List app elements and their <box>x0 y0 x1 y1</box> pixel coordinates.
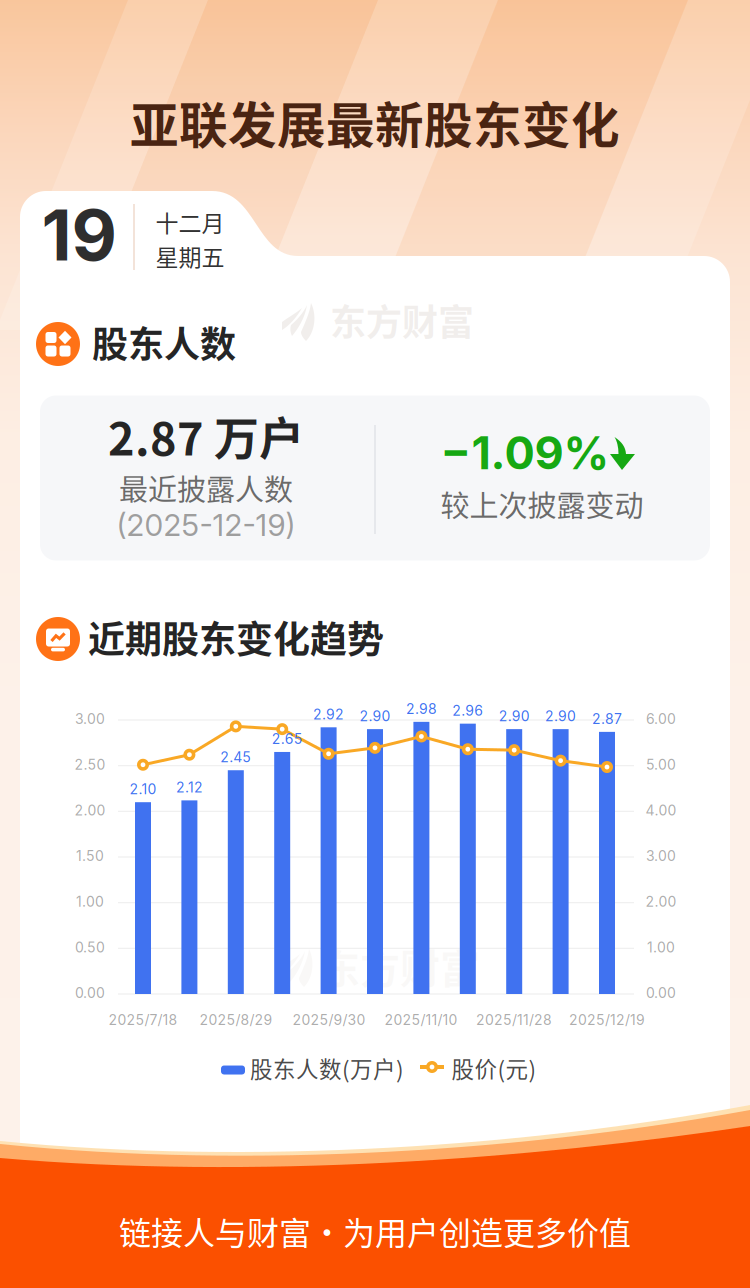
staticText: 亚联发展最新股东变化 <box>130 87 620 157</box>
staticText: 5.00 <box>646 756 676 773</box>
staticText: 近期股东变化趋势 <box>88 610 384 664</box>
staticText: 2.45 <box>220 749 251 766</box>
staticText: 2.12 <box>176 779 203 796</box>
staticText: −1.09% <box>440 426 609 480</box>
staticText: 2.10 <box>129 781 156 798</box>
staticText: 2025/8/29 <box>199 1011 272 1028</box>
staticText: 最近披露人数 <box>119 467 293 509</box>
staticText: 2025/11/28 <box>476 1011 552 1028</box>
staticText: 2.90 <box>499 708 530 725</box>
staticText: 十二月 <box>155 205 224 239</box>
staticText: 1.00 <box>647 939 675 956</box>
staticText: 2.87 万户 <box>108 403 304 469</box>
staticText: 2.00 <box>645 893 676 910</box>
staticText: 星期五 <box>155 239 224 273</box>
staticText: 较上次披露变动 <box>440 483 643 525</box>
staticText: 0.00 <box>646 984 676 1001</box>
staticText: 2025/11/10 <box>384 1011 457 1028</box>
staticText: 2.00 <box>74 802 105 819</box>
staticText: 2.96 <box>452 702 483 719</box>
staticText: 2.90 <box>359 708 390 725</box>
staticText: 链接人与财富·为用户创造更多价值 <box>119 1208 631 1254</box>
staticText: 19 <box>41 193 116 277</box>
staticText: 3.00 <box>646 847 676 864</box>
staticText: 1.50 <box>76 847 104 864</box>
staticText: 6.00 <box>646 710 676 727</box>
staticText: 2.90 <box>545 708 576 725</box>
staticText: 4.00 <box>645 802 676 819</box>
staticText: 东方财富 <box>320 937 480 995</box>
staticText: 2.50 <box>74 756 105 773</box>
staticText: 2025/9/30 <box>292 1011 365 1028</box>
staticText: 0.50 <box>75 939 105 956</box>
staticText: 1.00 <box>76 893 104 910</box>
staticText: 股价(元) <box>451 1052 536 1084</box>
staticText: (2025-12-19) <box>116 507 295 543</box>
staticText: 2025/12/19 <box>569 1011 645 1028</box>
staticText: 2025/7/18 <box>108 1011 177 1028</box>
staticText: 3.00 <box>75 710 105 727</box>
staticText: 2.92 <box>313 706 344 723</box>
staticText: 2.98 <box>406 700 437 717</box>
staticText: 2.87 <box>592 710 622 727</box>
staticText: 东方财富 <box>330 294 474 346</box>
staticText: 2.65 <box>272 730 303 747</box>
staticText: 股东人数(万户) <box>250 1052 404 1084</box>
staticText: 股东人数 <box>92 316 236 368</box>
staticText: 0.00 <box>75 984 105 1001</box>
